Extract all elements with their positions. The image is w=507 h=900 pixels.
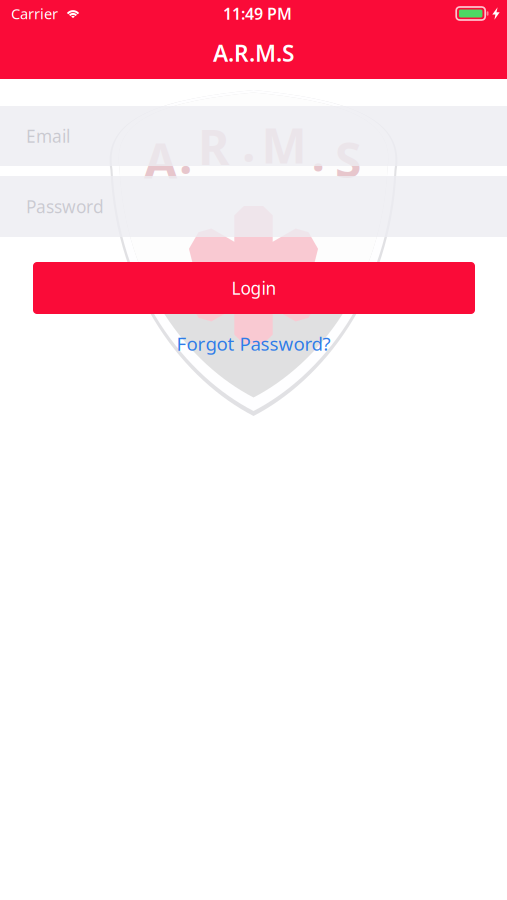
staticText: . bbox=[179, 124, 192, 187]
staticText: . bbox=[311, 121, 324, 185]
staticText: Password bbox=[26, 195, 104, 218]
staticText: Forgot Password? bbox=[176, 331, 330, 356]
staticText: A bbox=[144, 128, 177, 192]
staticText: R bbox=[198, 115, 229, 178]
staticText: Carrier bbox=[11, 4, 58, 23]
staticText: . bbox=[242, 112, 255, 175]
staticText: M bbox=[261, 113, 306, 177]
staticText: S bbox=[335, 128, 361, 191]
staticText: Email bbox=[26, 124, 70, 147]
button[interactable]: Forgot Password? bbox=[176, 331, 330, 356]
staticText: 11:49 PM bbox=[223, 3, 292, 24]
button[interactable]: Login bbox=[33, 262, 475, 314]
staticText: Login bbox=[231, 276, 276, 299]
staticText: A.R.M.S bbox=[213, 38, 294, 68]
